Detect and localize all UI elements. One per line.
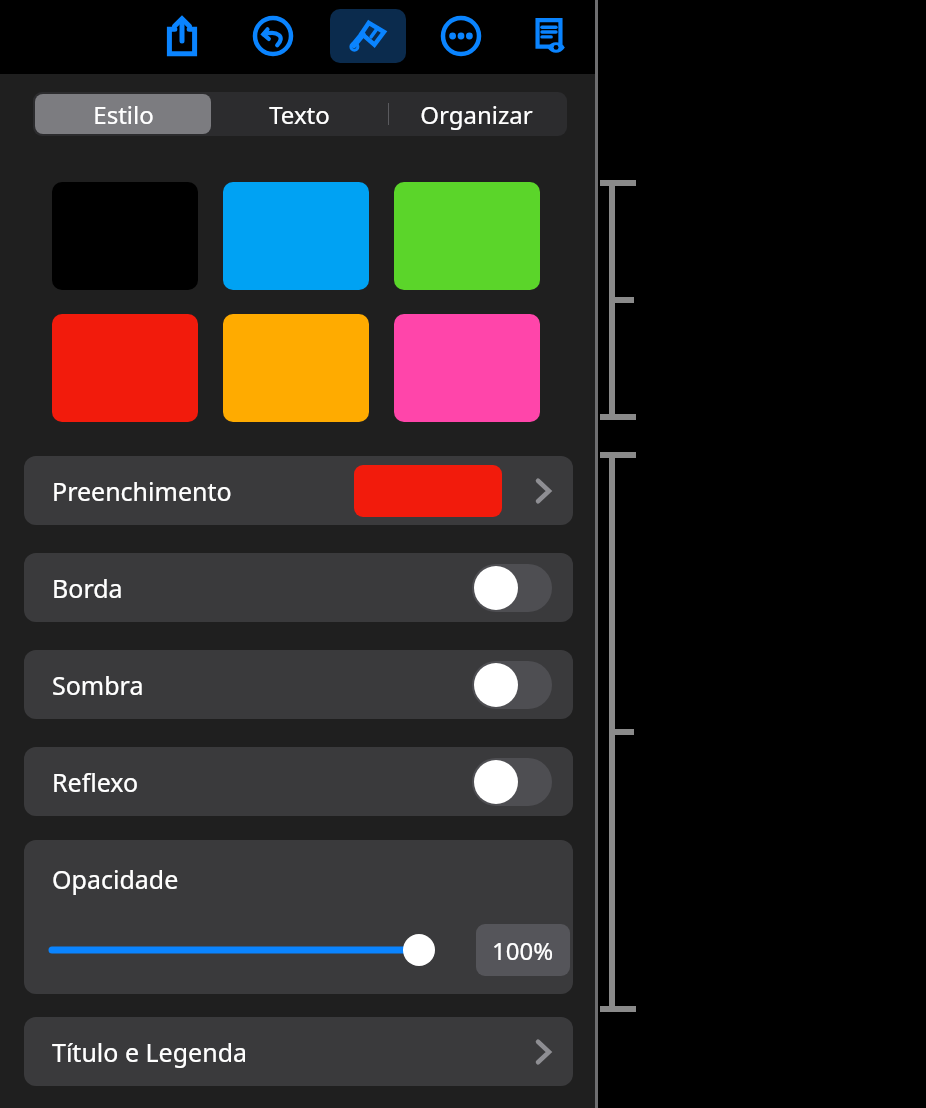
button[interactable]: Document options bbox=[516, 5, 582, 67]
button[interactable]: Share bbox=[148, 5, 216, 67]
staticText: Sombra bbox=[52, 668, 144, 702]
staticText: Texto bbox=[269, 98, 330, 131]
button[interactable]: Preenchimento bbox=[24, 456, 573, 525]
staticText: Estilo bbox=[93, 98, 154, 131]
staticText: Borda bbox=[52, 571, 123, 605]
button[interactable]: Style swatch bbox=[394, 182, 540, 290]
staticText: Reflexo bbox=[52, 765, 139, 799]
button[interactable]: Style swatch bbox=[394, 314, 540, 422]
button[interactable]: Undo bbox=[240, 5, 306, 67]
button[interactable]: Borda bbox=[24, 553, 573, 622]
button[interactable]: Style swatch bbox=[52, 314, 198, 422]
button[interactable]: Texto bbox=[211, 94, 388, 134]
button[interactable]: Format bbox=[330, 9, 406, 63]
button[interactable]: Título e Legenda bbox=[24, 1017, 573, 1086]
button[interactable]: More bbox=[428, 5, 494, 67]
button[interactable]: Estilo bbox=[35, 94, 211, 134]
staticText: Organizar bbox=[420, 98, 533, 131]
staticText: Título e Legenda bbox=[52, 1035, 248, 1069]
button[interactable]: Style swatch bbox=[223, 182, 369, 290]
staticText: Opacidade bbox=[52, 862, 179, 896]
staticText: 100% bbox=[492, 934, 554, 967]
button[interactable]: Opacity slider bbox=[52, 928, 452, 972]
button[interactable]: Reflexo bbox=[24, 747, 573, 816]
button[interactable]: 100% bbox=[476, 924, 570, 976]
staticText: Preenchimento bbox=[52, 474, 232, 508]
button[interactable]: Organizar bbox=[388, 94, 565, 134]
button[interactable]: Sombra bbox=[24, 650, 573, 719]
button[interactable]: Style swatch bbox=[223, 314, 369, 422]
